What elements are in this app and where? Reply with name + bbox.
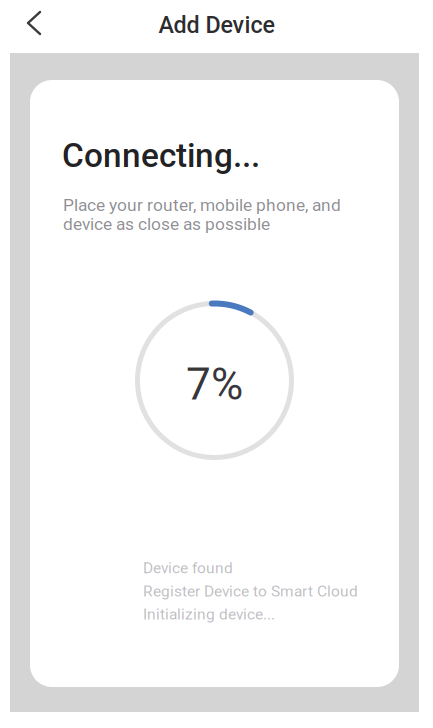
staticText: Register Device to Smart Cloud xyxy=(143,582,358,600)
staticText: Initializing device... xyxy=(143,605,275,623)
staticText: Device found xyxy=(143,559,233,577)
staticText: Connecting... xyxy=(62,136,260,175)
button[interactable]: Back xyxy=(0,0,60,46)
staticText: 7% xyxy=(186,359,243,410)
staticText: device as close as possible xyxy=(63,214,270,234)
staticText: Add Device xyxy=(158,11,274,39)
staticText: Place your router, mobile phone, and xyxy=(63,195,341,215)
